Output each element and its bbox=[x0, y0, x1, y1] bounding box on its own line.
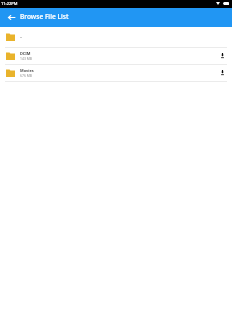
button[interactable]: Movies bbox=[0, 65, 232, 81]
staticText: 11:22PM bbox=[1, 1, 18, 6]
button[interactable]: Download bbox=[218, 68, 228, 78]
button[interactable]: DCIM bbox=[0, 48, 232, 64]
staticText: Browse File List bbox=[20, 12, 69, 21]
staticText: DCIM bbox=[20, 51, 31, 56]
staticText: 143 MB bbox=[20, 56, 32, 61]
button[interactable]: Download bbox=[218, 51, 228, 61]
staticText: .. bbox=[20, 34, 23, 39]
button[interactable]: Back bbox=[0, 8, 19, 27]
staticText: Movies bbox=[20, 68, 34, 73]
staticText: 676 MB bbox=[20, 73, 32, 78]
button[interactable]: .. bbox=[0, 27, 232, 47]
